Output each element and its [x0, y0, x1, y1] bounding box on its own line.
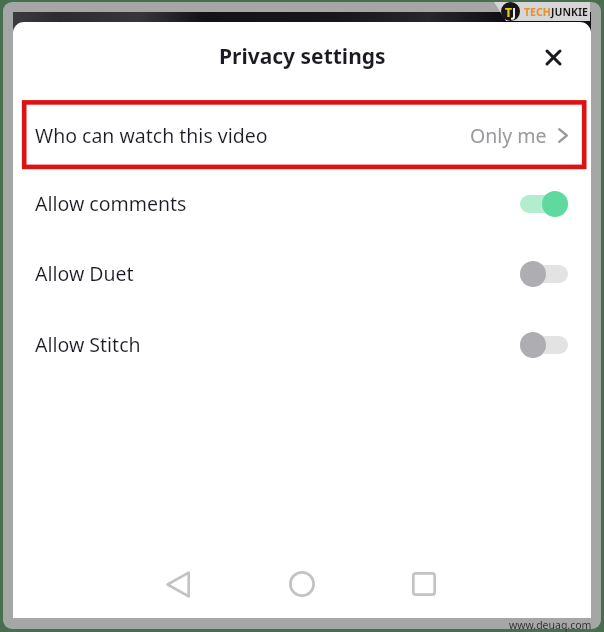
- button[interactable]: Home: [280, 562, 324, 606]
- staticText: JUNKIE: [551, 5, 588, 19]
- button[interactable]: Who can watch this video: [13, 100, 591, 170]
- button[interactable]: Allow Duet: [13, 251, 591, 296]
- button[interactable]: Back: [156, 562, 200, 606]
- button[interactable]: Recents: [402, 562, 446, 606]
- staticText: T: [505, 4, 512, 20]
- staticText: Privacy settings: [219, 42, 386, 71]
- staticText: TECH: [524, 5, 551, 19]
- staticText: www.deuaq.com: [509, 618, 592, 632]
- staticText: Allow Duet: [35, 260, 134, 287]
- staticText: Who can watch this video: [35, 122, 268, 149]
- button[interactable]: Allow comments: [13, 181, 591, 226]
- staticText: Only me: [470, 122, 547, 149]
- staticText: J: [512, 4, 516, 20]
- button[interactable]: Close: [533, 37, 573, 77]
- staticText: Allow comments: [35, 190, 187, 217]
- staticText: Allow Stitch: [35, 331, 141, 358]
- button[interactable]: Allow Stitch: [13, 322, 591, 367]
